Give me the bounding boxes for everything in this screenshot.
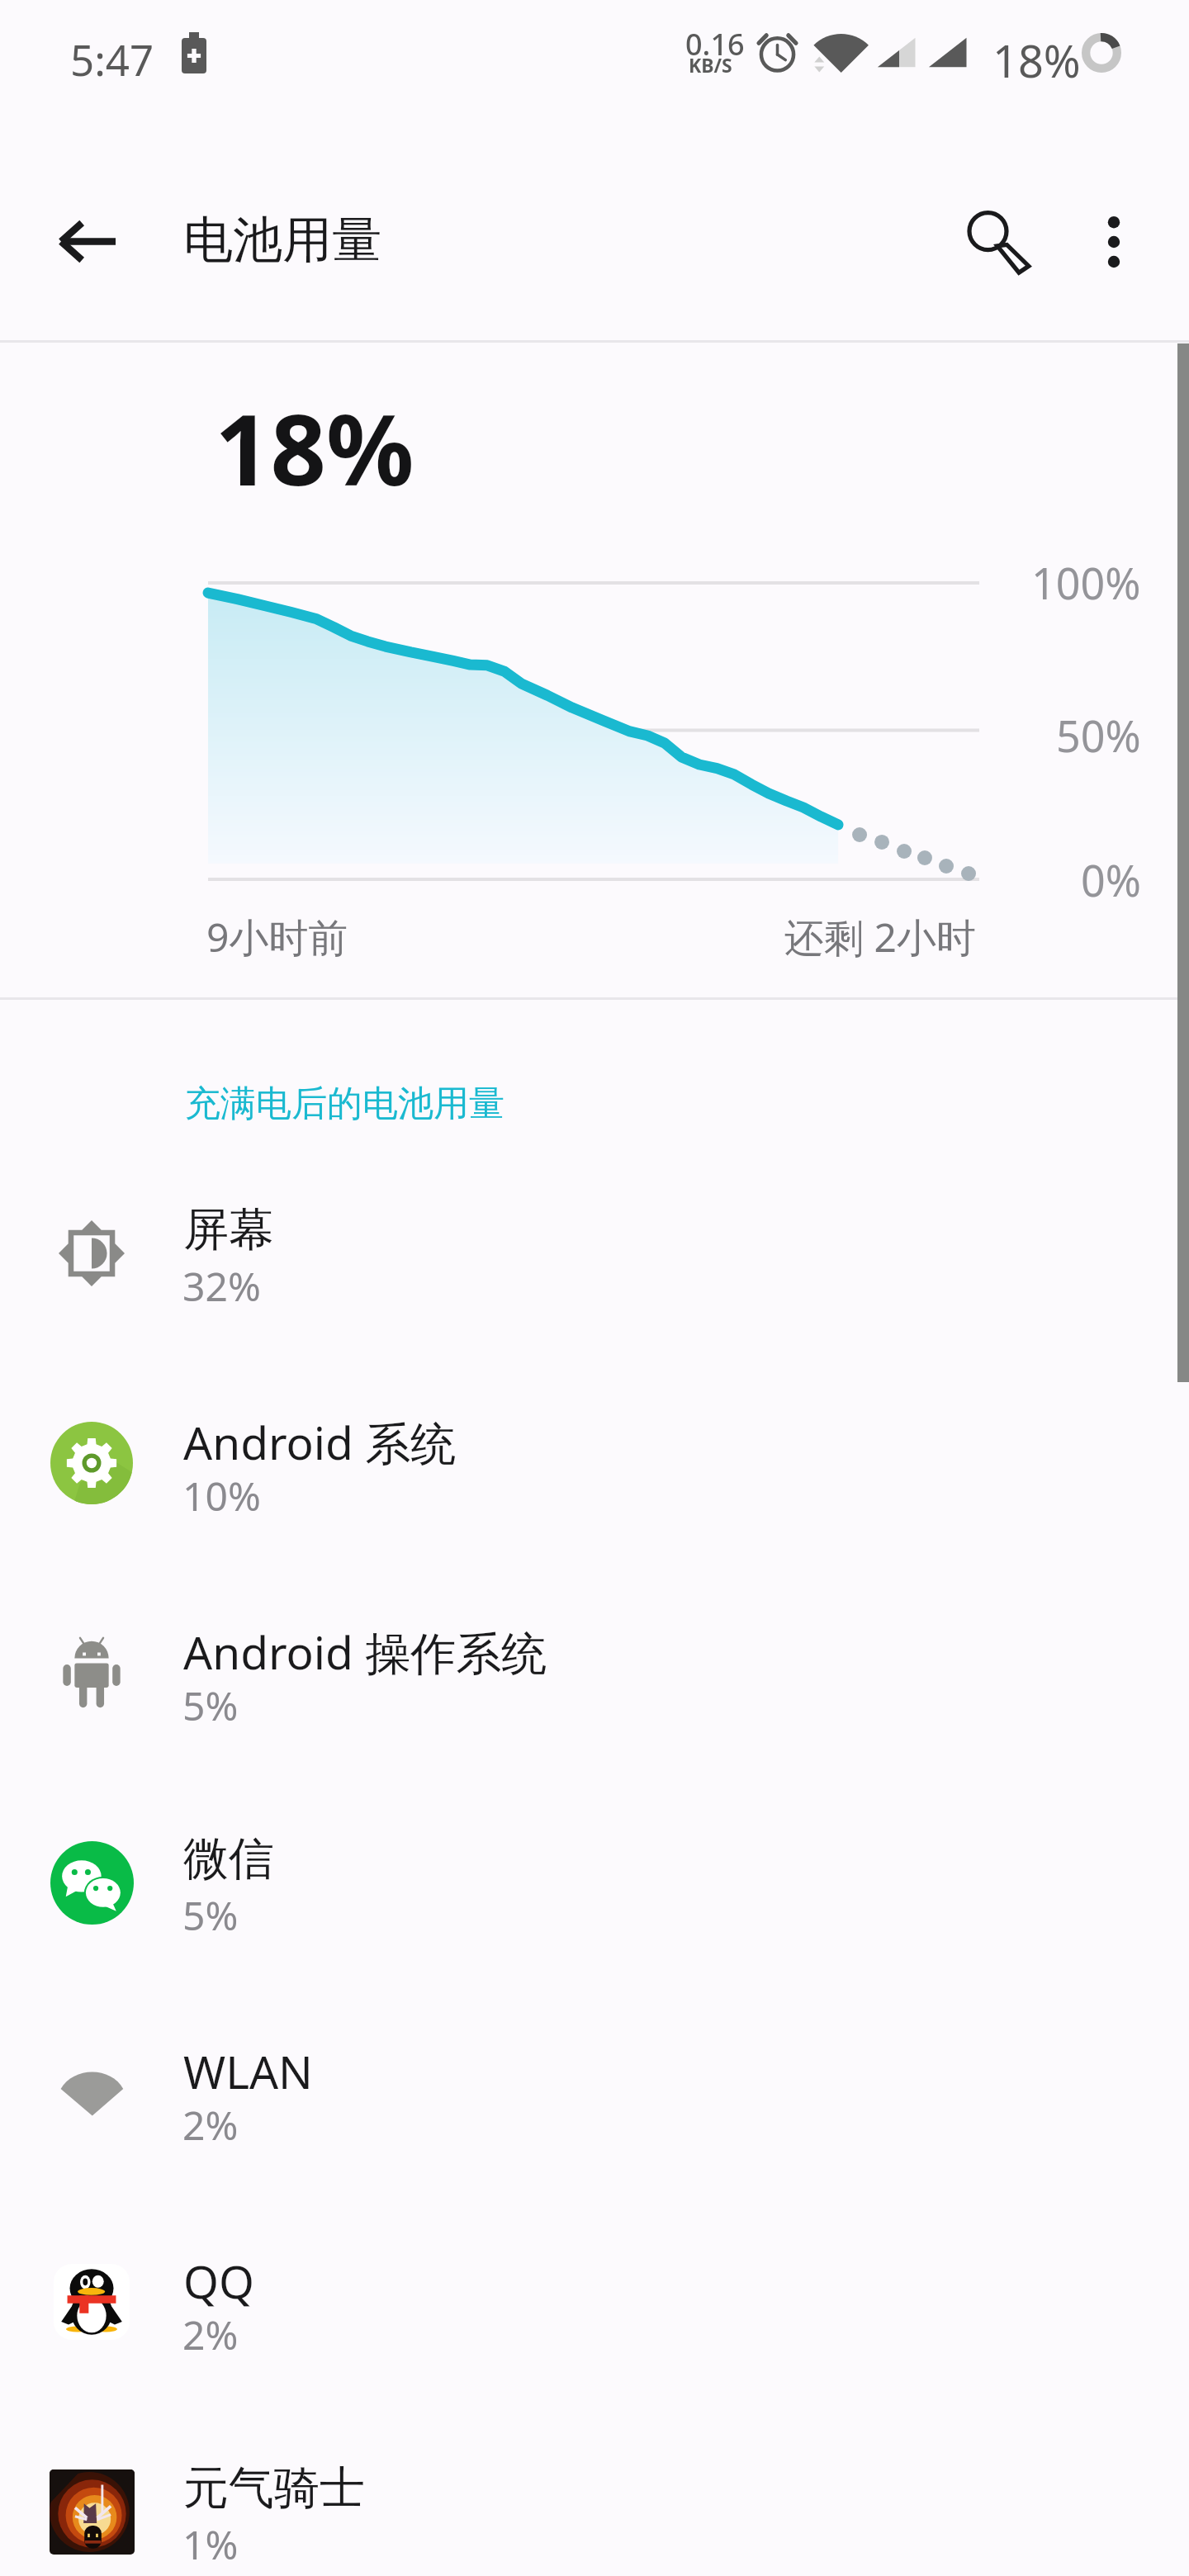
button[interactable]: Search [938, 181, 1059, 301]
staticText: 9小时前 [206, 910, 348, 964]
staticText: 2% [182, 2098, 239, 2152]
staticText: 32% [182, 1259, 261, 1313]
staticText: Android 系统 [183, 1411, 457, 1473]
staticText: 2% [182, 2308, 239, 2361]
staticText: 元气骑士 [183, 2460, 365, 2517]
staticText: 18% [992, 30, 1081, 91]
button[interactable]: QQ [0, 2192, 1189, 2390]
button[interactable]: Back [26, 181, 147, 301]
staticText: 屏幕 [183, 1201, 274, 1258]
staticText: 100% [1031, 553, 1141, 612]
button[interactable]: 微信 [0, 1773, 1189, 1971]
staticText: WLAN [183, 2040, 313, 2102]
button[interactable]: 屏幕 [0, 1144, 1189, 1342]
staticText: KB/S [689, 52, 732, 78]
staticText: 5:47 [70, 31, 154, 88]
button[interactable]: Android 系统 [0, 1353, 1189, 1551]
staticText: 5% [182, 1679, 239, 1732]
staticText: 充满电后的电池用量 [185, 1082, 504, 1126]
staticText: QQ [183, 2250, 254, 2312]
staticText: 5% [182, 1888, 239, 1942]
staticText: 10% [182, 1469, 261, 1522]
button[interactable]: More options [1054, 181, 1174, 301]
staticText: 微信 [183, 1830, 274, 1887]
button[interactable]: Android 操作系统 [0, 1563, 1189, 1761]
staticText: 1% [182, 2517, 239, 2571]
staticText: 0.16 [685, 24, 745, 64]
staticText: 0% [1081, 850, 1141, 909]
staticText: Android 操作系统 [183, 1621, 547, 1683]
staticText: 50% [1056, 706, 1141, 765]
staticText: 还剩 2小时 [784, 910, 976, 964]
button[interactable]: 元气骑士 [0, 2402, 1189, 2576]
staticText: 电池用量 [183, 209, 381, 272]
button[interactable]: WLAN [0, 1982, 1189, 2181]
staticText: 18% [215, 381, 414, 514]
